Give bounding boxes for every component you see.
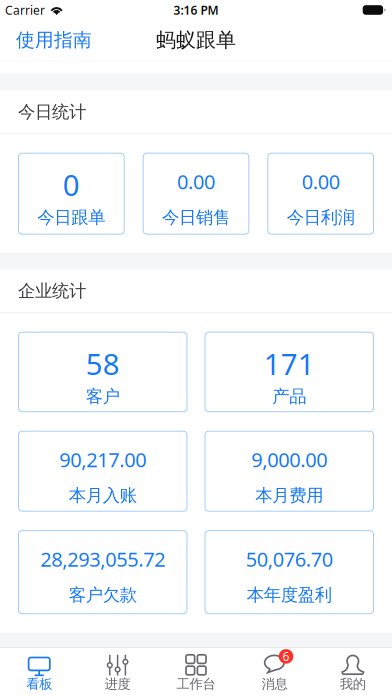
staticText: Carrier xyxy=(5,2,45,18)
button[interactable]: 171 xyxy=(204,332,374,412)
staticText: 本月费用 xyxy=(255,485,323,506)
staticText: 90,217.00 xyxy=(59,446,146,473)
button[interactable]: 进度 xyxy=(78,648,157,696)
button[interactable]: 28,293,055.72 xyxy=(18,530,187,614)
staticText: 客户欠款 xyxy=(69,584,137,606)
button[interactable]: 6 xyxy=(235,648,314,696)
staticText: 使用指南 xyxy=(16,28,92,51)
button[interactable]: 9,000.00 xyxy=(204,431,374,512)
staticText: 今日统计 xyxy=(18,101,86,123)
button[interactable]: 使用指南 xyxy=(16,22,92,57)
button[interactable]: 50,076.70 xyxy=(204,530,374,614)
staticText: 工作台 xyxy=(176,676,215,692)
staticText: 本月入账 xyxy=(69,485,137,506)
button[interactable]: 工作台 xyxy=(157,648,235,696)
button[interactable]: 0.00 xyxy=(267,153,374,235)
staticText: 9,000.00 xyxy=(251,446,327,473)
staticText: 今日销售 xyxy=(162,207,230,228)
staticText: 蚂蚁跟单 xyxy=(156,28,236,52)
staticText: 进度 xyxy=(105,676,131,692)
staticText: 今日利润 xyxy=(287,207,355,228)
staticText: 3:16 PM xyxy=(173,2,218,18)
staticText: 我的 xyxy=(340,676,366,692)
button[interactable]: 我的 xyxy=(314,648,392,696)
staticText: 今日跟单 xyxy=(37,207,105,228)
staticText: 0 xyxy=(63,165,80,204)
button[interactable]: 0.00 xyxy=(143,153,249,235)
button[interactable]: 0 xyxy=(18,153,125,235)
staticText: 0.00 xyxy=(177,168,215,195)
staticText: 50,076.70 xyxy=(246,546,333,572)
staticText: 企业统计 xyxy=(18,280,86,302)
staticText: 0.00 xyxy=(302,168,340,195)
button[interactable]: 看板 xyxy=(0,648,78,696)
staticText: 消息 xyxy=(261,676,287,692)
staticText: 本年度盈利 xyxy=(247,584,332,606)
button[interactable]: 58 xyxy=(18,332,187,412)
staticText: 171 xyxy=(264,344,315,383)
staticText: 58 xyxy=(86,344,120,383)
staticText: 看板 xyxy=(26,676,52,692)
staticText: 客户 xyxy=(86,386,120,407)
button[interactable]: 90,217.00 xyxy=(18,431,187,512)
staticText: 产品 xyxy=(272,386,306,407)
staticText: 28,293,055.72 xyxy=(40,546,165,572)
staticText: 6 xyxy=(282,648,289,664)
